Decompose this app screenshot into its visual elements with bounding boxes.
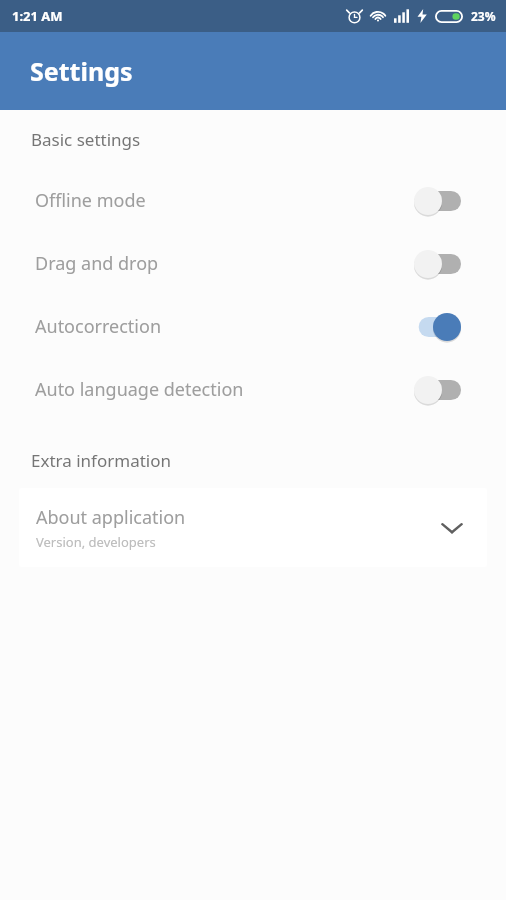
staticText: Settings <box>30 54 133 88</box>
staticText: Auto language detection <box>35 377 414 402</box>
button[interactable]: On <box>414 313 461 341</box>
button[interactable]: Expand <box>436 512 468 544</box>
button[interactable]: Off <box>414 250 461 278</box>
staticText: 23% <box>471 8 496 24</box>
staticText: Autocorrection <box>35 314 414 339</box>
button[interactable]: Autocorrection <box>0 295 506 358</box>
staticText: Version, developers <box>36 533 156 551</box>
button[interactable]: Drag and drop <box>0 232 506 295</box>
staticText: Drag and drop <box>35 251 414 276</box>
staticText: Extra information <box>31 449 172 472</box>
button[interactable]: Off <box>414 376 461 404</box>
staticText: About application <box>36 505 186 530</box>
button[interactable]: Auto language detection <box>0 358 506 421</box>
staticText: Offline mode <box>35 188 414 213</box>
staticText: Basic settings <box>31 128 141 151</box>
button[interactable]: Offline mode <box>0 169 506 232</box>
button[interactable]: About application <box>19 488 487 567</box>
staticText: 1:21 AM <box>12 7 63 25</box>
button[interactable]: Off <box>414 187 461 215</box>
